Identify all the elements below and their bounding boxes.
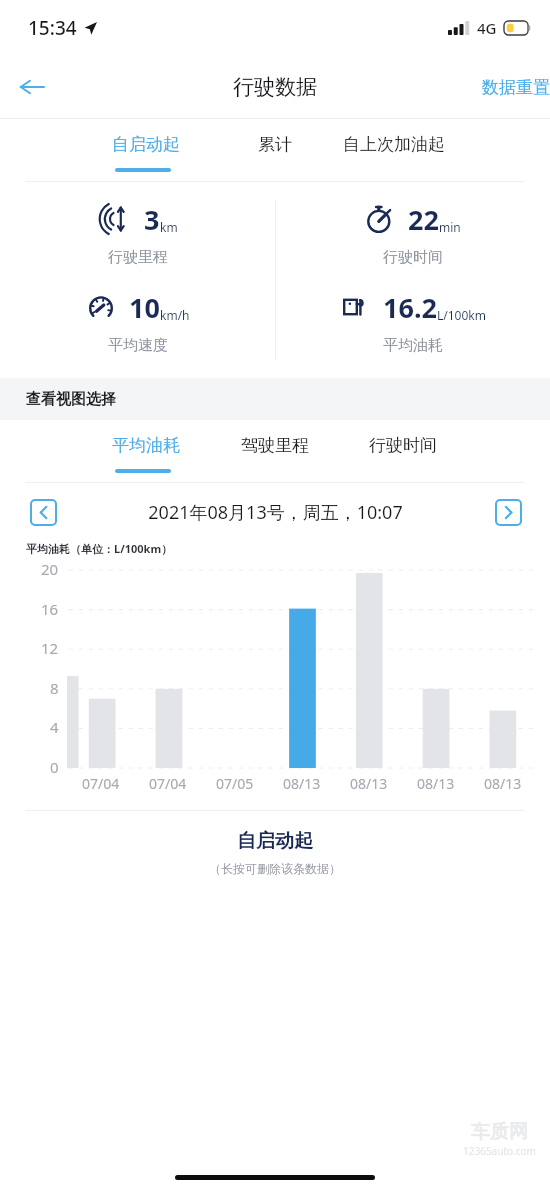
staticText: 车质网 [471, 1120, 528, 1144]
staticText: 8 [50, 678, 59, 698]
staticText: 4 [50, 717, 59, 737]
staticText: 16 [41, 599, 59, 619]
staticText: 08/13 [484, 774, 522, 793]
button[interactable]: 平均油耗 [112, 435, 180, 456]
staticText: （长按可删除该条数据） [209, 861, 341, 876]
staticText: 行驶时间 [369, 435, 437, 456]
staticText: 08/13 [417, 774, 455, 793]
staticText: 10 [129, 289, 160, 326]
button[interactable]: 返回 [9, 65, 53, 109]
staticText: 自启动起 [112, 134, 180, 155]
staticText: L/100km [437, 307, 486, 323]
staticText: 4G [477, 18, 497, 38]
staticText: 16.2 [383, 289, 437, 326]
staticText: 平均油耗（单位：L/100km） [26, 541, 173, 556]
staticText: 驾驶里程 [241, 435, 309, 456]
staticText: 15:34 [28, 15, 77, 41]
staticText: 自启动起 [237, 829, 313, 853]
staticText: 12 [41, 638, 59, 658]
staticText: 3 [144, 201, 160, 238]
staticText: 累计 [258, 134, 292, 155]
staticText: 20 [41, 559, 59, 579]
staticText: 平均油耗 [112, 435, 180, 456]
button[interactable]: 驾驶里程 [241, 435, 309, 456]
staticText: 0 [50, 757, 59, 777]
staticText: 12365auto.com [463, 1144, 536, 1158]
staticText: 平均油耗 [383, 336, 443, 355]
button[interactable]: 自上次加油起 [343, 134, 445, 155]
staticText: 自上次加油起 [343, 134, 445, 155]
button[interactable]: 行驶时间 [369, 435, 437, 456]
staticText: km [160, 219, 178, 235]
staticText: 08/13 [350, 774, 388, 793]
button[interactable]: 累计 [258, 134, 292, 155]
button[interactable]: 数据重置 [482, 77, 550, 98]
staticText: 平均速度 [108, 336, 168, 355]
button[interactable]: 上一条记录 [30, 499, 57, 526]
staticText: km/h [160, 307, 190, 323]
staticText: 行驶里程 [108, 248, 168, 267]
staticText: 2021年08月13号，周五，10:07 [148, 500, 403, 525]
staticText: 08/13 [283, 774, 321, 793]
staticText: 07/05 [216, 774, 254, 793]
staticText: 22 [408, 201, 439, 238]
staticText: 查看视图选择 [26, 390, 116, 409]
staticText: 行驶时间 [383, 248, 443, 267]
staticText: 07/04 [82, 774, 120, 793]
button[interactable]: 自启动起 [112, 134, 180, 155]
staticText: min [439, 219, 461, 235]
staticText: 行驶数据 [233, 74, 317, 100]
staticText: 07/04 [149, 774, 187, 793]
button[interactable]: 下一条记录 [495, 499, 522, 526]
staticText: 数据重置 [482, 77, 550, 98]
